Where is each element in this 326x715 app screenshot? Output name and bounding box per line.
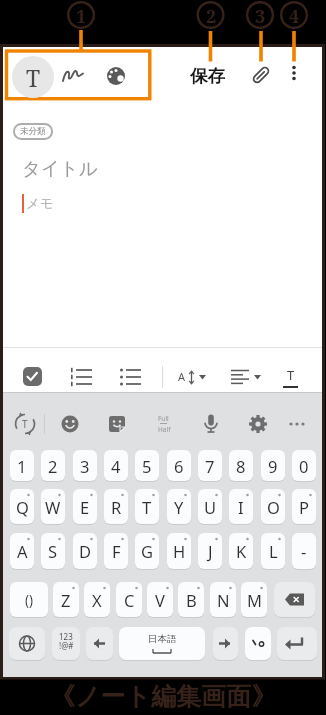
button[interactable]: M — [241, 582, 267, 617]
staticText: 1 — [76, 4, 87, 26]
button[interactable]: L — [261, 533, 285, 569]
staticText: O — [267, 496, 280, 518]
staticText: T — [142, 496, 152, 518]
staticText: B — [186, 589, 197, 611]
button[interactable]: H — [167, 533, 191, 569]
button[interactable] — [59, 62, 87, 90]
button[interactable]: S — [41, 533, 65, 569]
staticText: 4 — [289, 4, 300, 26]
button[interactable]: 保存 — [177, 64, 237, 87]
button[interactable]: Full — [150, 410, 178, 438]
button[interactable]: F — [104, 533, 128, 569]
button[interactable]: Q — [10, 489, 34, 524]
button[interactable]: 4 — [104, 450, 128, 481]
button[interactable]: 1 — [10, 450, 34, 481]
button[interactable] — [23, 367, 42, 386]
button[interactable]: D — [73, 533, 97, 569]
button[interactable] — [228, 364, 266, 390]
button[interactable]: 9 — [261, 450, 285, 481]
button[interactable] — [103, 410, 131, 438]
button[interactable]: V — [147, 582, 173, 617]
staticText: 123 — [59, 631, 73, 642]
button[interactable]: J — [198, 533, 222, 569]
button[interactable]: Z — [53, 582, 79, 617]
button[interactable] — [68, 364, 96, 390]
button[interactable]: G — [135, 533, 159, 569]
button[interactable]: A — [174, 364, 212, 390]
button[interactable] — [56, 410, 84, 438]
button[interactable]: T — [12, 56, 54, 98]
button[interactable]: Y — [167, 489, 191, 524]
button[interactable]: 未分類 — [13, 123, 53, 140]
button[interactable]: T — [11, 410, 39, 438]
staticText: N — [217, 589, 230, 611]
button[interactable] — [244, 410, 272, 438]
button[interactable]: P — [292, 489, 316, 524]
button[interactable]: B — [178, 582, 204, 617]
staticText: 9 — [268, 455, 278, 477]
staticText: 0 — [299, 455, 309, 477]
button[interactable]: 2 — [41, 450, 65, 481]
staticText: 《ノート編集画面》 — [50, 681, 277, 712]
staticText: - — [301, 540, 307, 562]
staticText: 2 — [48, 455, 58, 477]
button[interactable]: X — [84, 582, 110, 617]
button[interactable] — [284, 62, 304, 88]
staticText: 8 — [236, 455, 246, 477]
button[interactable] — [9, 627, 45, 660]
button[interactable] — [248, 62, 274, 88]
staticText: S — [48, 540, 58, 562]
button[interactable]: T — [280, 364, 301, 390]
staticText: 日本語 — [148, 633, 177, 645]
button[interactable] — [117, 364, 145, 390]
staticText: T — [22, 417, 28, 431]
button[interactable]: I — [229, 489, 253, 524]
staticText: メモ — [26, 195, 54, 212]
button[interactable] — [86, 627, 113, 660]
button[interactable]: A — [10, 533, 34, 569]
button[interactable]: U — [198, 489, 222, 524]
button[interactable]: 6 — [167, 450, 191, 481]
button[interactable]: 8 — [229, 450, 253, 481]
button[interactable]: 5 — [135, 450, 159, 481]
staticText: T — [287, 366, 295, 384]
staticText: 4 — [111, 455, 121, 477]
staticText: A — [17, 540, 28, 562]
button[interactable] — [245, 627, 271, 660]
staticText: 1 — [17, 455, 27, 477]
button[interactable] — [103, 63, 129, 89]
button[interactable]: C — [116, 582, 142, 617]
button[interactable]: R — [104, 489, 128, 524]
button[interactable]: T — [135, 489, 159, 524]
staticText: E — [80, 496, 90, 518]
button[interactable]: 123 — [52, 627, 80, 660]
button[interactable]: 0 — [292, 450, 316, 481]
button[interactable] — [286, 410, 310, 438]
button[interactable] — [274, 582, 315, 617]
staticText: P — [299, 496, 309, 518]
button[interactable]: K — [229, 533, 253, 569]
button[interactable] — [197, 410, 225, 438]
button[interactable]: N — [210, 582, 236, 617]
staticText: H — [173, 540, 186, 562]
staticText: F — [112, 540, 121, 562]
staticText: K — [236, 540, 247, 562]
staticText: C — [124, 589, 135, 611]
button[interactable] — [213, 627, 238, 660]
button[interactable]: 日本語 — [119, 627, 205, 660]
button[interactable] — [277, 627, 317, 660]
button[interactable]: E — [73, 489, 97, 524]
button[interactable]: O — [261, 489, 285, 524]
staticText: () — [25, 591, 34, 609]
staticText: M — [247, 589, 262, 611]
staticText: 3 — [255, 4, 266, 26]
staticText: 5 — [142, 455, 152, 477]
button[interactable]: 3 — [73, 450, 97, 481]
staticText: J — [208, 540, 213, 562]
button[interactable]: () — [10, 582, 48, 617]
button[interactable]: - — [292, 533, 316, 569]
staticText: タイトル — [22, 157, 98, 180]
staticText: T — [26, 62, 41, 93]
button[interactable]: 7 — [198, 450, 222, 481]
button[interactable]: W — [41, 489, 65, 524]
